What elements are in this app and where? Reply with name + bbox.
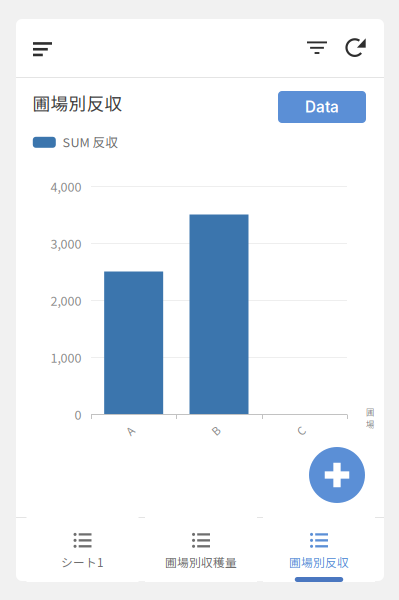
staticText: 0: [74, 405, 81, 423]
staticText: 圃場別収穫量: [165, 553, 237, 570]
staticText: 場: [366, 418, 374, 430]
staticText: C: [297, 422, 304, 439]
button[interactable]: Sheets: [21, 28, 63, 70]
button[interactable]: Filter: [296, 27, 338, 69]
button[interactable]: 圃場別反収: [263, 517, 375, 582]
staticText: 圃場別反収: [289, 553, 349, 570]
button[interactable]: Add record: [309, 447, 365, 503]
button[interactable]: Data: [278, 91, 366, 123]
staticText: B: [212, 422, 219, 439]
button[interactable]: Refresh: [334, 27, 376, 69]
button[interactable]: シート1: [26, 517, 138, 582]
staticText: 3,000: [50, 234, 81, 252]
staticText: A: [127, 422, 134, 439]
staticText: 圃場別反収: [32, 90, 122, 115]
staticText: 4,000: [50, 177, 81, 195]
staticText: 圃: [366, 406, 374, 418]
staticText: 1,000: [50, 348, 81, 366]
staticText: SUM 反収: [62, 132, 118, 151]
button[interactable]: 圃場別収穫量: [145, 517, 257, 582]
staticText: シート1: [61, 553, 104, 570]
staticText: Data: [305, 98, 339, 116]
staticText: 2,000: [50, 291, 81, 309]
